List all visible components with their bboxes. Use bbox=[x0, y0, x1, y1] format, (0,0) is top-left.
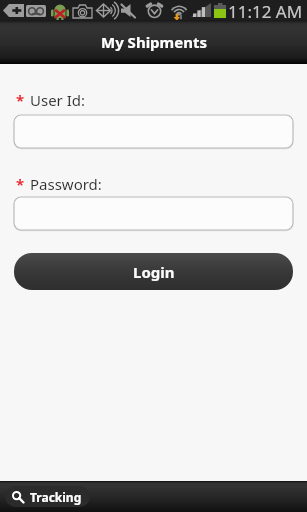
staticText: User Id: bbox=[30, 90, 86, 108]
button[interactable] bbox=[14, 197, 293, 230]
staticText: * bbox=[16, 90, 25, 108]
staticText: Tracking bbox=[30, 489, 82, 505]
button[interactable]: Login bbox=[14, 253, 293, 290]
button[interactable]: Tracking bbox=[5, 486, 90, 507]
staticText: Password: bbox=[30, 174, 102, 192]
staticText: My Shipments bbox=[101, 32, 207, 52]
staticText: * bbox=[16, 174, 25, 192]
staticText: 11:12 AM bbox=[228, 0, 303, 19]
staticText: Login bbox=[133, 262, 175, 282]
button[interactable] bbox=[14, 115, 293, 148]
